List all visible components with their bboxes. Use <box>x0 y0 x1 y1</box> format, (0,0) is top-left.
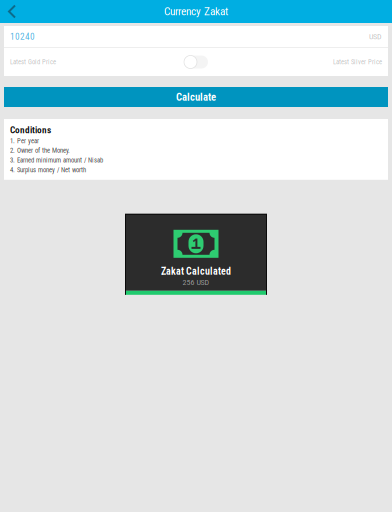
staticText: Currency Zakat <box>164 5 228 18</box>
staticText: 4. Surplus money / Net worth <box>10 166 86 174</box>
staticText: Conditions <box>10 124 51 135</box>
staticText: Latest Silver Price <box>333 58 382 66</box>
staticText: 1. Per year <box>10 137 39 145</box>
staticText: 2. Owner of the Money. <box>10 147 70 154</box>
staticText: Latest Gold Price <box>10 58 56 66</box>
button[interactable]: Calculate <box>0 87 392 107</box>
staticText: 10240 <box>10 31 35 42</box>
button[interactable]: Gold or silver price toggle <box>184 55 208 68</box>
staticText: 256 USD <box>182 278 209 287</box>
staticText: 3. Earned minimum amount / Nisab <box>10 156 103 164</box>
staticText: USD <box>369 32 382 41</box>
staticText: Calculate <box>176 91 216 103</box>
button[interactable]: Back <box>0 0 24 23</box>
staticText: Zakat Calculated <box>161 265 231 277</box>
